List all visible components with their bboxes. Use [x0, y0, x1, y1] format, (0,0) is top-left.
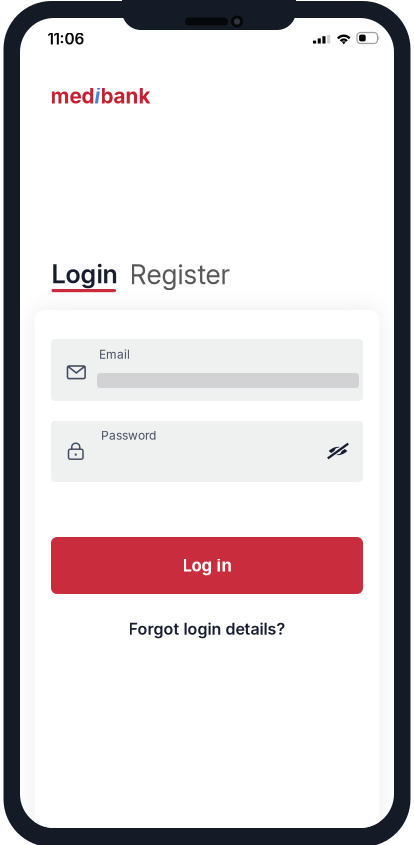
staticText: Forgot login details?: [128, 619, 285, 639]
button[interactable]: Log in: [51, 537, 363, 594]
button[interactable]: Show password: [315, 429, 361, 473]
staticText: Register: [129, 258, 230, 291]
button[interactable]: Login: [51, 262, 117, 294]
staticText: 11:06: [47, 30, 84, 48]
staticText: bank: [100, 83, 150, 108]
staticText: med: [50, 83, 94, 108]
button[interactable]: Register: [117, 262, 244, 294]
staticText: i: [94, 83, 100, 108]
staticText: Password: [101, 428, 156, 443]
button[interactable]: Forgot login details?: [51, 617, 363, 641]
staticText: Login: [51, 259, 117, 289]
staticText: Log in: [182, 555, 231, 576]
staticText: Email: [99, 347, 130, 362]
